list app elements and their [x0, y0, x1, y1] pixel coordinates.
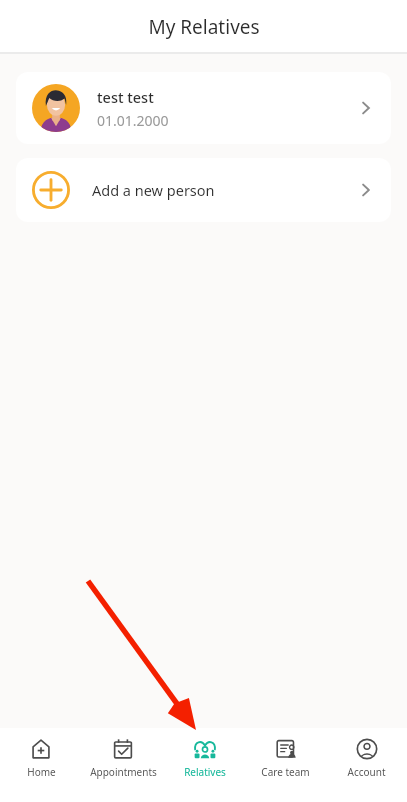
staticText: 01.01.2000	[97, 111, 169, 130]
button[interactable]: Relatives	[164, 728, 245, 779]
staticText: Add a new person	[92, 180, 215, 200]
staticText: test test	[97, 87, 154, 107]
staticText: Relatives	[184, 765, 226, 779]
staticText: Account	[347, 765, 386, 779]
staticText: Appointments	[90, 765, 157, 779]
button[interactable]: Add a new person	[16, 158, 391, 222]
button[interactable]: test test	[16, 72, 391, 144]
button[interactable]: Care team	[245, 728, 326, 779]
button[interactable]: Appointments	[82, 728, 164, 779]
button[interactable]: Home	[0, 728, 82, 779]
staticText: Care team	[261, 765, 310, 779]
button[interactable]: Account	[326, 728, 407, 779]
staticText: My Relatives	[148, 14, 260, 40]
staticText: Home	[27, 765, 56, 779]
